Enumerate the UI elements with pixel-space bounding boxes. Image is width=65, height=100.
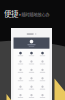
button[interactable]: Service — [37, 67, 48, 74]
button[interactable]: Service — [15, 59, 26, 66]
button[interactable]: Service — [26, 84, 37, 91]
button[interactable]: Service — [15, 50, 26, 57]
button[interactable]: Service — [15, 76, 26, 83]
button[interactable]: Service — [26, 59, 37, 66]
staticText: 便捷 — [4, 8, 18, 19]
button[interactable]: Service — [26, 92, 37, 99]
button[interactable]: Service — [15, 67, 26, 74]
button[interactable]: Service — [26, 67, 37, 74]
button[interactable]: Service — [37, 92, 48, 99]
staticText: + — [19, 12, 21, 18]
button[interactable]: Service — [37, 84, 48, 91]
button[interactable]: Service — [15, 92, 26, 99]
staticText: 随时随地放心办 — [22, 12, 50, 18]
button[interactable]: Service — [37, 59, 48, 66]
button[interactable]: Service — [26, 50, 37, 57]
button[interactable]: Service — [15, 84, 26, 91]
button[interactable]: Service — [37, 50, 48, 57]
button[interactable]: Service — [26, 76, 37, 83]
button[interactable]: Service — [37, 76, 48, 83]
